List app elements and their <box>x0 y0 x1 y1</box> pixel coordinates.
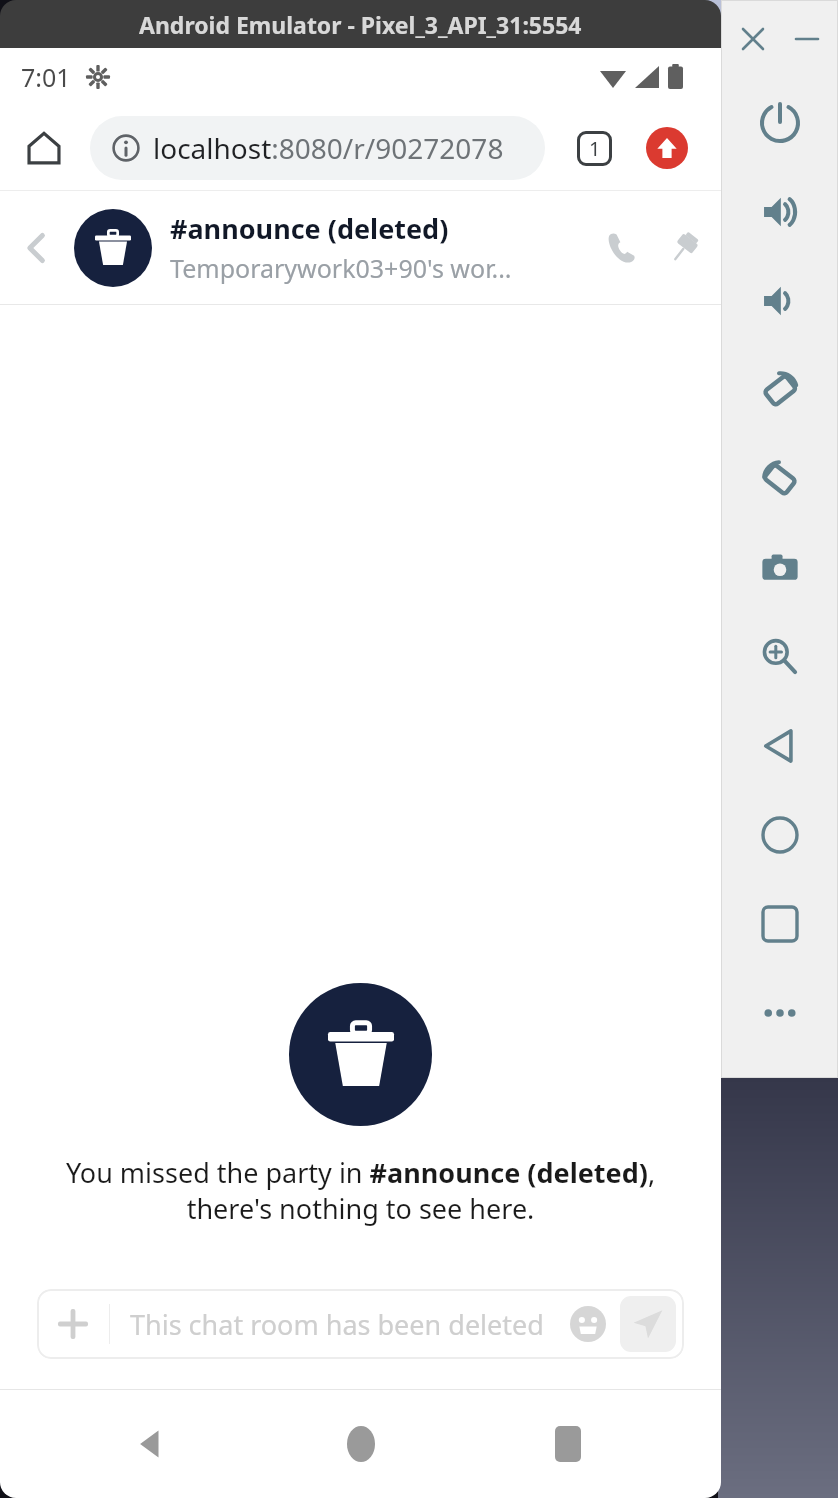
button[interactable]: Update <box>638 119 696 177</box>
button[interactable]: Home <box>326 1409 396 1479</box>
staticText: Temporarywork03+90's wor... <box>170 251 512 285</box>
button[interactable]: Home <box>14 118 74 178</box>
staticText: #announce (deleted) <box>170 210 449 247</box>
button[interactable]: Back <box>6 217 68 279</box>
button[interactable]: Power <box>721 78 838 167</box>
button[interactable]: Recents <box>533 1409 603 1479</box>
button[interactable]: Back <box>721 701 838 790</box>
button[interactable]: Close <box>733 19 773 59</box>
button[interactable]: Back <box>116 1409 186 1479</box>
staticText: Android Emulator - Pixel_3_API_31:5554 <box>139 9 582 40</box>
button[interactable]: Call <box>591 217 653 279</box>
button[interactable]: Emoji <box>562 1298 614 1350</box>
button[interactable]: Add attachment <box>37 1289 684 1359</box>
button[interactable]: localhost:8080/r/90272078 <box>90 116 545 180</box>
button[interactable]: Home <box>721 790 838 879</box>
button[interactable] <box>74 209 152 287</box>
button[interactable]: Recents <box>721 879 838 968</box>
staticText: localhost:8080/r/90272078 <box>153 129 504 167</box>
button[interactable]: Volume up <box>721 167 838 256</box>
button[interactable]: Tabs <box>565 119 623 177</box>
button[interactable]: Rotate left <box>721 345 838 434</box>
staticText: 7:01 <box>21 60 71 94</box>
staticText: This chat room has been deleted <box>130 1306 562 1343</box>
staticText: 1 <box>589 135 601 162</box>
button[interactable]: More <box>721 968 838 1057</box>
button[interactable]: Minimize <box>787 19 827 59</box>
button[interactable]: Volume down <box>721 256 838 345</box>
button[interactable]: Pin <box>653 217 715 279</box>
button[interactable]: Rotate right <box>721 434 838 523</box>
button[interactable]: Send <box>620 1296 676 1352</box>
button[interactable]: Zoom <box>721 612 838 701</box>
staticText: You missed the party in #announce (delet… <box>38 1154 683 1227</box>
button[interactable]: Screenshot <box>721 523 838 612</box>
button[interactable]: Add attachment <box>37 1289 109 1359</box>
